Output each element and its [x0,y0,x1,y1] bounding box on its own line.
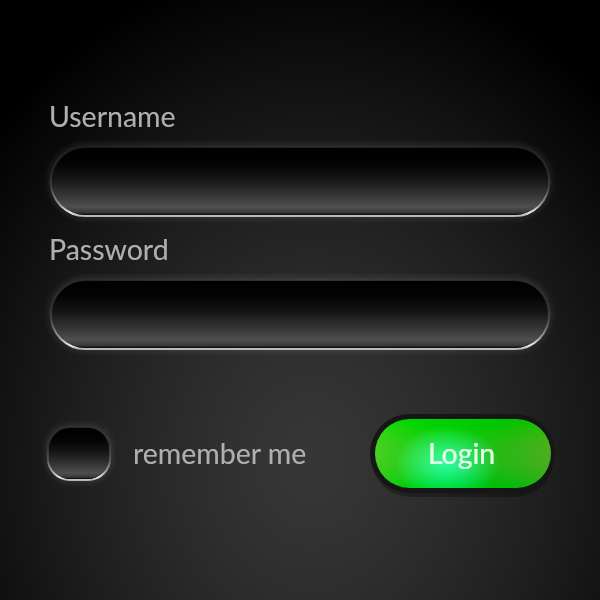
staticText: Username [49,99,176,133]
staticText: remember me [133,436,307,470]
staticText: Password [49,232,169,266]
button[interactable]: Login [370,414,556,494]
button[interactable]: remember me [133,436,307,470]
staticText: Login [428,436,496,470]
button[interactable]: Password input [40,269,560,359]
button[interactable]: Username input [40,136,560,226]
button[interactable]: Remember me checkbox [37,416,121,491]
